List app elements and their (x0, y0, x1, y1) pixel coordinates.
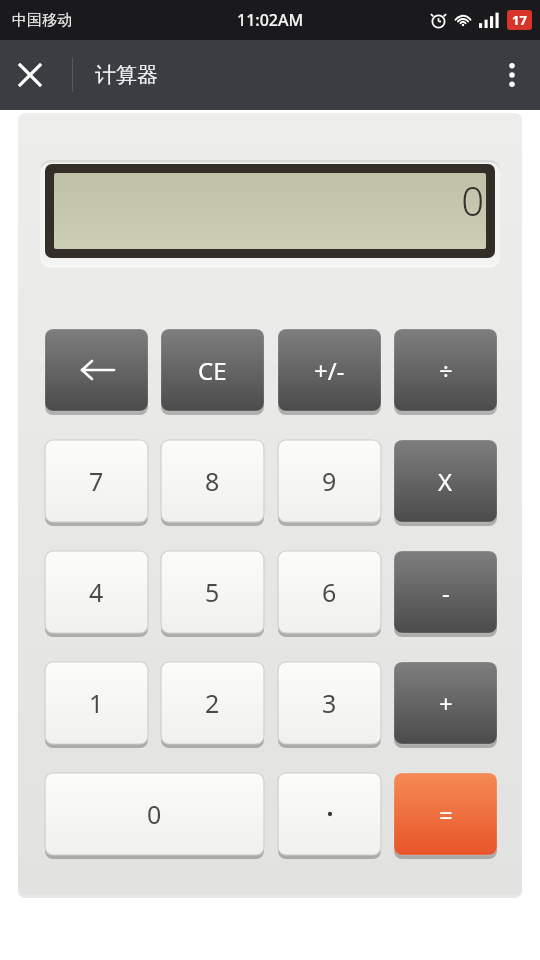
staticText: 0 (54, 173, 484, 227)
button[interactable]: = (394, 773, 497, 855)
staticText: X (438, 465, 453, 498)
button[interactable]: ÷ (394, 329, 497, 411)
staticText: CE (198, 354, 227, 387)
button[interactable]: X (394, 440, 497, 522)
button[interactable]: +/- (278, 329, 381, 411)
button[interactable]: 3 (278, 662, 381, 744)
staticText: 中国移动 (12, 11, 72, 30)
button[interactable]: 8 (161, 440, 264, 522)
staticText: 7 (89, 464, 104, 498)
button[interactable]: - (394, 551, 497, 633)
staticText: 计算器 (95, 62, 158, 88)
staticText: +/- (314, 354, 345, 387)
staticText: 11:02AM (237, 9, 304, 31)
button[interactable]: More options (484, 47, 540, 103)
button[interactable]: 1 (45, 662, 148, 744)
staticText: + (439, 687, 453, 720)
staticText: 2 (205, 686, 220, 720)
button[interactable]: Backspace (45, 329, 148, 411)
button[interactable]: 5 (161, 551, 264, 633)
button[interactable]: + (394, 662, 497, 744)
staticText: 5 (205, 575, 220, 609)
button[interactable]: 9 (278, 440, 381, 522)
staticText: - (442, 576, 450, 609)
staticText: 1 (89, 686, 104, 720)
button[interactable]: 6 (278, 551, 381, 633)
button[interactable]: 2 (161, 662, 264, 744)
staticText: = (439, 798, 453, 831)
staticText: 0 (147, 797, 162, 831)
staticText: 8 (205, 464, 220, 498)
staticText: 4 (89, 575, 104, 609)
button[interactable]: CE (161, 329, 264, 411)
staticText: ÷ (439, 354, 453, 387)
staticText: 9 (322, 464, 337, 498)
button[interactable]: 7 (45, 440, 148, 522)
button[interactable]: Close (0, 45, 60, 105)
button[interactable] (278, 773, 381, 855)
staticText: 6 (322, 575, 337, 609)
button[interactable]: 4 (45, 551, 148, 633)
staticText: 3 (322, 686, 337, 720)
button[interactable]: 0 (45, 773, 264, 855)
staticText: 17 (512, 11, 527, 29)
